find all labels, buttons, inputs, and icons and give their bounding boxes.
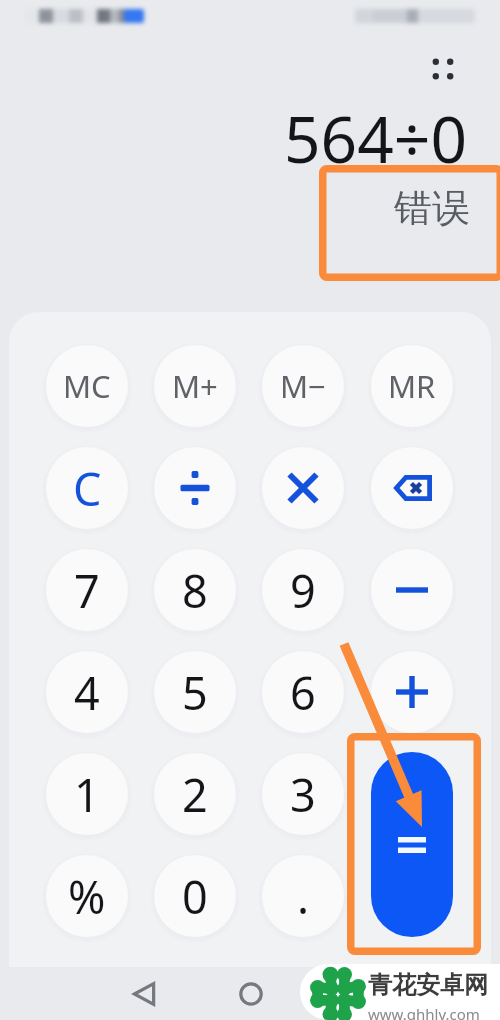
button[interactable]: Minus xyxy=(371,549,453,631)
staticText: 3 xyxy=(290,764,316,825)
button[interactable]: Backspace xyxy=(371,447,453,529)
button[interactable]: 1 xyxy=(46,753,128,835)
staticText: . xyxy=(297,866,310,927)
staticText: 7 xyxy=(74,560,100,621)
button[interactable]: 3 xyxy=(262,753,344,835)
staticText: 错误 xyxy=(394,184,470,232)
button[interactable]: Back xyxy=(123,972,167,1016)
staticText: 9 xyxy=(290,560,316,621)
staticText: MR xyxy=(388,365,436,407)
button[interactable]: 5 xyxy=(154,651,236,733)
button[interactable]: Equals xyxy=(371,752,453,937)
button[interactable]: Divide xyxy=(154,447,236,529)
button[interactable]: % xyxy=(46,855,128,937)
button[interactable]: 8 xyxy=(154,549,236,631)
button[interactable]: MC xyxy=(46,345,128,427)
staticText: M− xyxy=(280,365,326,407)
staticText: 青花安卓网 xyxy=(368,970,488,1000)
button[interactable]: 7 xyxy=(46,549,128,631)
button[interactable]: 0 xyxy=(154,855,236,937)
staticText: 8 xyxy=(182,560,208,621)
button[interactable]: M+ xyxy=(154,345,236,427)
button[interactable]: M− xyxy=(262,345,344,427)
staticText: 0 xyxy=(182,866,208,927)
button[interactable]: 6 xyxy=(262,651,344,733)
staticText: www.qhhlv.com xyxy=(368,1004,480,1020)
button[interactable]: . xyxy=(262,855,344,937)
button[interactable]: Home xyxy=(229,972,273,1016)
button[interactable]: 2 xyxy=(154,753,236,835)
staticText: 6 xyxy=(290,662,316,723)
staticText: 1 xyxy=(74,764,100,825)
button[interactable]: 9 xyxy=(262,549,344,631)
staticText: MC xyxy=(63,365,111,407)
button[interactable]: 4 xyxy=(46,651,128,733)
button[interactable]: Multiply xyxy=(262,447,344,529)
staticText: 5 xyxy=(182,662,208,723)
button[interactable]: C xyxy=(46,447,128,529)
staticText: % xyxy=(68,866,106,927)
staticText: 4 xyxy=(74,662,100,723)
staticText: 564÷0 xyxy=(284,95,468,182)
staticText: 2 xyxy=(182,764,208,825)
staticText: C xyxy=(73,458,102,519)
button[interactable]: MR xyxy=(371,345,453,427)
staticText: M+ xyxy=(172,365,218,407)
button[interactable]: More options xyxy=(419,45,467,93)
button[interactable]: Plus xyxy=(371,651,453,733)
